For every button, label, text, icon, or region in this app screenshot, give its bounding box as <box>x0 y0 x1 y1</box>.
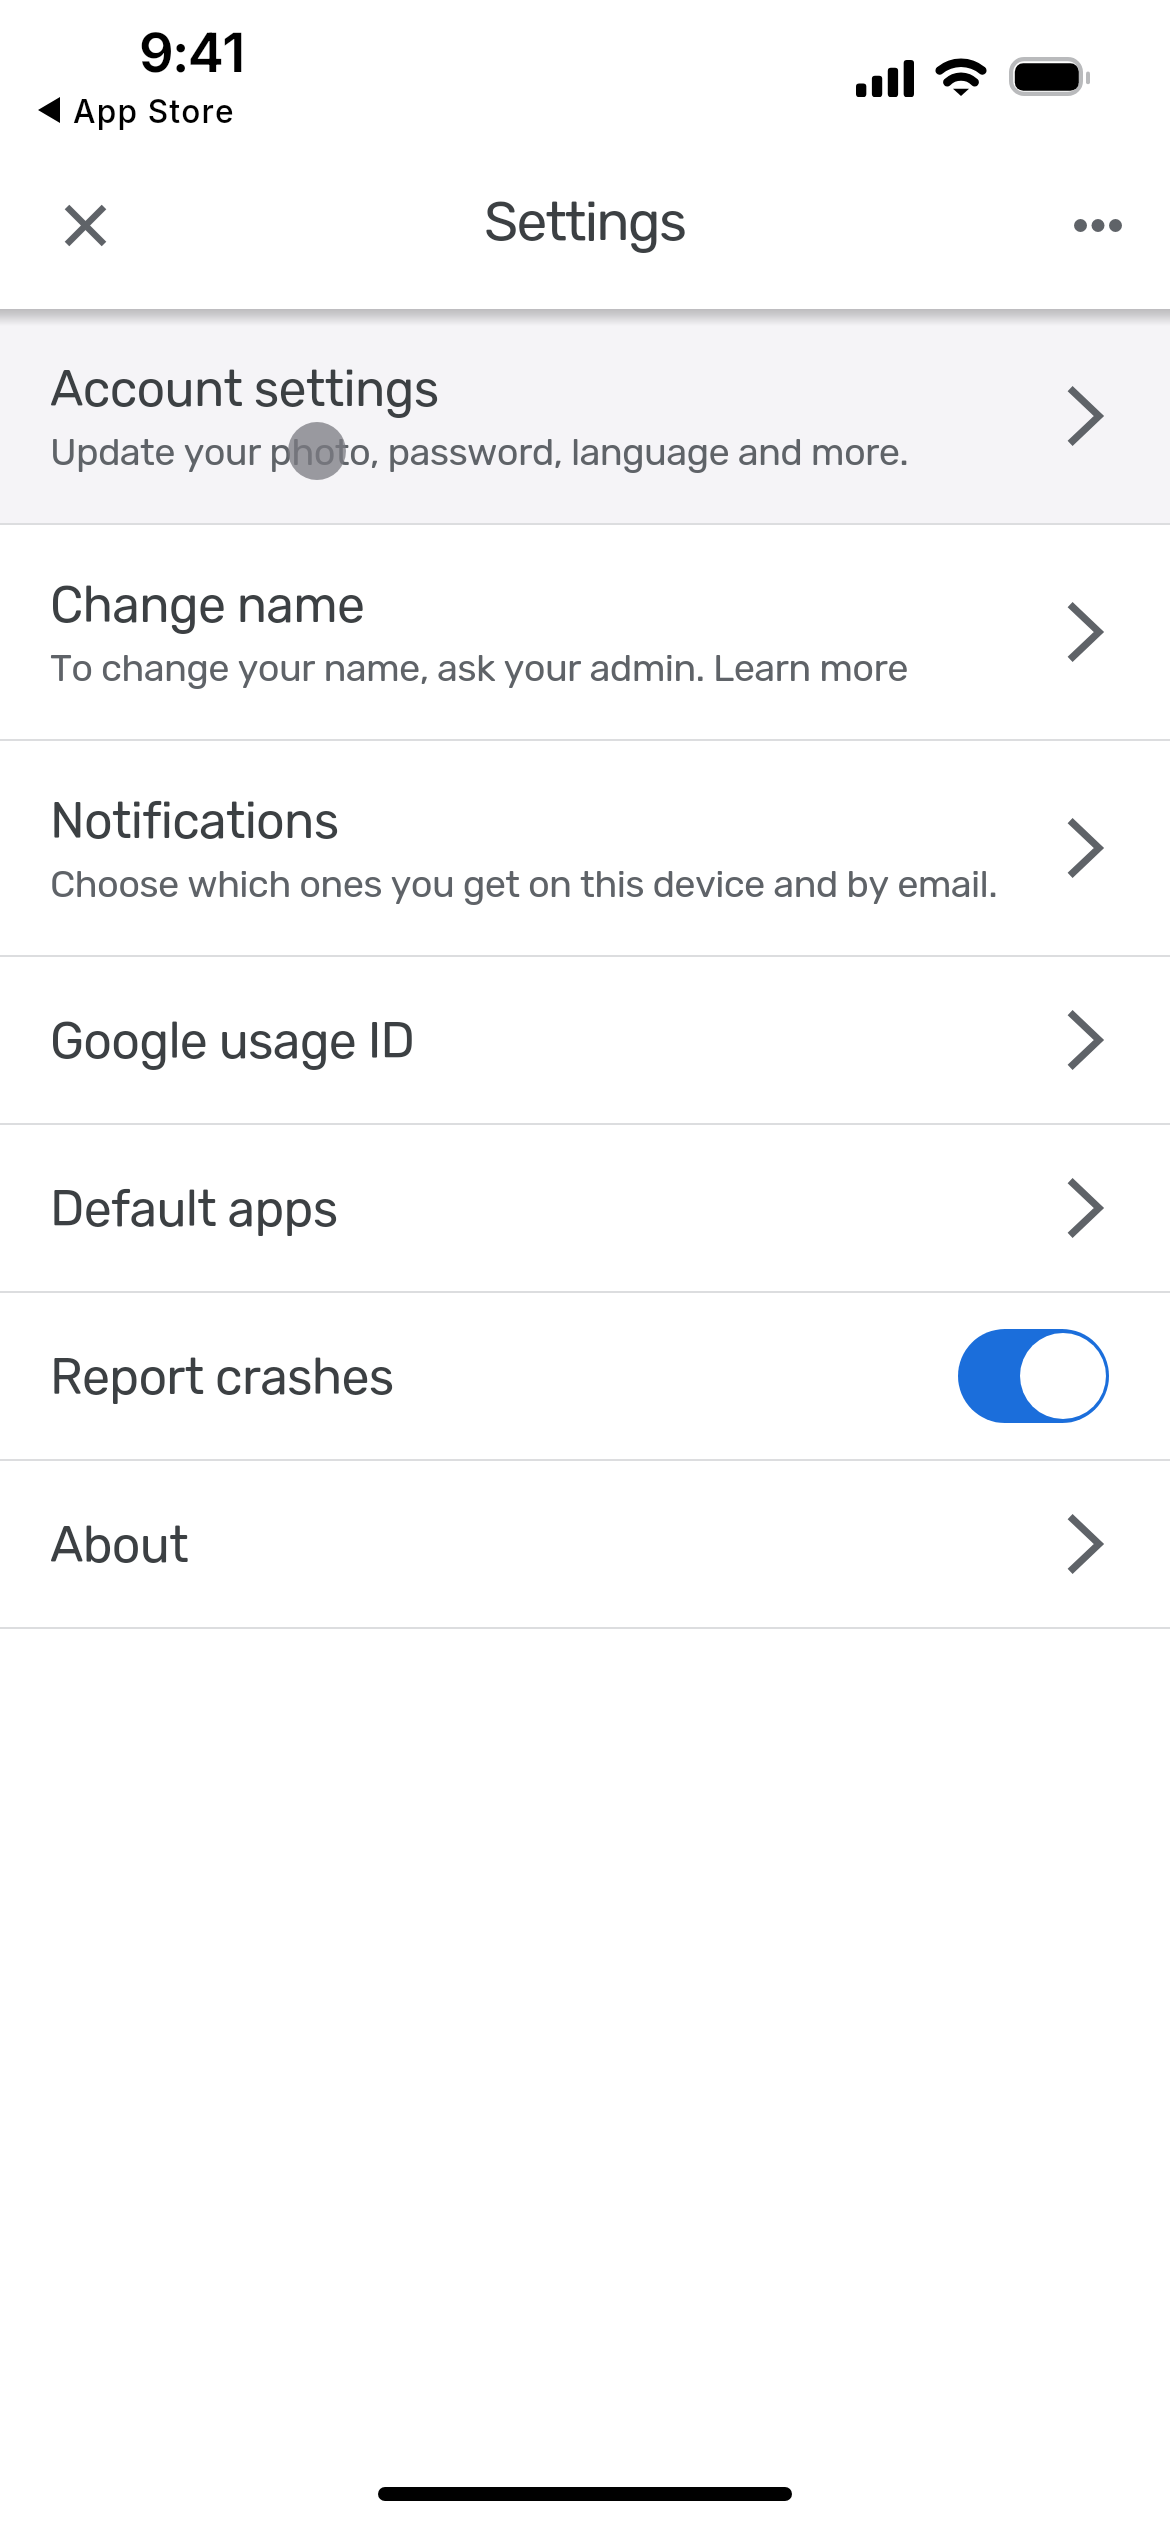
button[interactable]: More options <box>1058 185 1138 265</box>
staticText: Notifications <box>50 791 339 850</box>
staticText: Report crashes <box>50 1347 958 1406</box>
button[interactable]: Change name <box>0 525 1170 739</box>
button[interactable]: Report crashes <box>0 1293 1170 1459</box>
staticText: Default apps <box>50 1179 338 1238</box>
staticText: Choose which ones you get on this device… <box>50 861 998 906</box>
staticText: About <box>50 1515 188 1574</box>
button[interactable]: Notifications <box>0 741 1170 955</box>
staticText: Change name <box>50 575 365 634</box>
staticText: Google usage ID <box>50 1011 415 1070</box>
staticText: App Store <box>73 92 235 130</box>
staticText: To change your name, ask your admin. Lea… <box>50 645 908 690</box>
button[interactable]: Account settings <box>0 309 1170 523</box>
staticText: 9:41 <box>139 20 244 85</box>
button[interactable]: Default apps <box>0 1125 1170 1291</box>
button[interactable]: Google usage ID <box>0 957 1170 1123</box>
button[interactable]: Close <box>45 185 125 265</box>
staticText: Account settings <box>50 359 439 418</box>
staticText: Settings <box>484 189 686 254</box>
staticText: Update your photo, password, language an… <box>50 429 909 474</box>
button[interactable]: About <box>0 1461 1170 1627</box>
